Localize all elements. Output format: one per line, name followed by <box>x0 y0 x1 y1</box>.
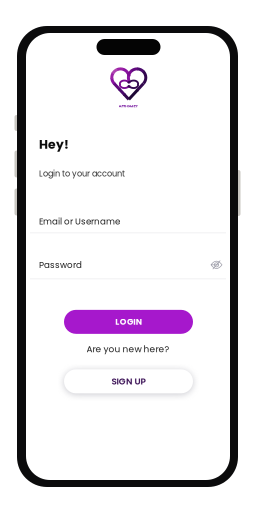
button[interactable]: SIGN UP <box>64 369 193 393</box>
button[interactable]: Show password <box>205 257 222 272</box>
button[interactable]: LOGIN <box>64 310 193 334</box>
staticText: Hey! <box>39 136 69 153</box>
staticText: Email or Username <box>39 215 120 227</box>
staticText: LOGIN <box>115 316 142 328</box>
staticText: Login to your account <box>39 168 125 179</box>
staticText: Are you new here? <box>86 343 169 355</box>
staticText: AFROMET <box>118 103 137 109</box>
staticText: SIGN UP <box>111 375 146 387</box>
staticText: Password <box>39 259 82 271</box>
